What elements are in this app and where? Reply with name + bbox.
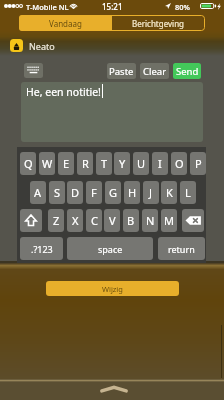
button[interactable]: He, een notitie! [21, 82, 203, 142]
staticText: space [98, 243, 123, 255]
button[interactable]: Q [20, 152, 36, 175]
button[interactable]: space [67, 237, 153, 260]
button[interactable]: Keyboard [24, 63, 43, 78]
staticText: G [109, 185, 118, 200]
staticText: E [63, 156, 70, 171]
staticText: M [164, 213, 174, 228]
staticText: Z [53, 213, 60, 228]
button[interactable]: W [39, 152, 55, 175]
button[interactable]: M [161, 209, 177, 232]
button[interactable]: N [142, 209, 158, 232]
button[interactable]: Shift [20, 209, 42, 232]
staticText: Neato [29, 40, 55, 52]
button[interactable]: B [123, 209, 139, 232]
staticText: D [71, 185, 80, 200]
button[interactable]: return [158, 237, 205, 260]
staticText: 15:21 [102, 1, 123, 12]
button[interactable]: Z [48, 209, 64, 232]
button[interactable]: H [124, 181, 140, 204]
staticText: Paste [109, 65, 134, 78]
staticText: O [175, 156, 184, 171]
button[interactable]: I [152, 152, 168, 175]
staticText: T [101, 156, 108, 171]
button[interactable]: K [161, 181, 177, 204]
staticText: C [91, 213, 98, 228]
staticText: H [128, 185, 137, 200]
button[interactable]: G [105, 181, 121, 204]
staticText: I [158, 156, 162, 171]
staticText: S [54, 185, 61, 200]
staticText: P [195, 156, 202, 171]
staticText: V [109, 213, 116, 228]
button[interactable]: S [49, 181, 65, 204]
staticText: K [166, 185, 173, 200]
button[interactable]: Berichtgeving [112, 15, 205, 31]
staticText: .?123 [31, 243, 53, 255]
staticText: Y [119, 156, 126, 171]
button[interactable]: Paste [107, 63, 136, 79]
button[interactable]: Clear [140, 63, 169, 79]
staticText: B [127, 213, 135, 228]
staticText: J [149, 185, 153, 200]
staticText: He, een notitie! [26, 85, 101, 99]
button[interactable]: A [30, 181, 46, 204]
button[interactable]: J [143, 181, 159, 204]
button[interactable]: C [86, 209, 102, 232]
staticText: return [168, 243, 195, 255]
staticText: Vandaag [49, 18, 82, 29]
button[interactable]: X [67, 209, 83, 232]
staticText: F [91, 185, 97, 200]
staticText: R [82, 156, 89, 171]
button[interactable]: O [171, 152, 187, 175]
staticText: A [34, 185, 42, 200]
button[interactable]: R [77, 152, 93, 175]
button[interactable]: U [133, 152, 149, 175]
button[interactable]: Backspace [182, 209, 204, 232]
button[interactable]: F [86, 181, 102, 204]
button[interactable]: Send [173, 63, 201, 79]
button[interactable]: V [104, 209, 120, 232]
staticText: X [72, 213, 79, 228]
button[interactable]: Wijzig [46, 281, 179, 296]
staticText: N [146, 213, 155, 228]
button[interactable]: L [180, 181, 196, 204]
staticText: Wijzig [102, 284, 123, 294]
button[interactable]: .?123 [20, 237, 63, 260]
staticText: U [137, 156, 146, 171]
staticText: Clear [143, 65, 167, 78]
button[interactable]: Neato [10, 39, 55, 52]
button[interactable]: P [190, 152, 206, 175]
button[interactable]: Vandaag [19, 15, 112, 31]
button[interactable]: D [67, 181, 83, 204]
staticText: Send [176, 65, 199, 78]
staticText: Berichtgeving [132, 18, 185, 29]
staticText: 80% [175, 2, 190, 12]
staticText: T-Mobile NL [26, 2, 69, 12]
staticText: L [185, 185, 191, 200]
button[interactable]: E [58, 152, 74, 175]
staticText: Q [24, 156, 33, 171]
button[interactable]: Y [114, 152, 130, 175]
staticText: W [42, 156, 53, 171]
button[interactable]: T [96, 152, 112, 175]
